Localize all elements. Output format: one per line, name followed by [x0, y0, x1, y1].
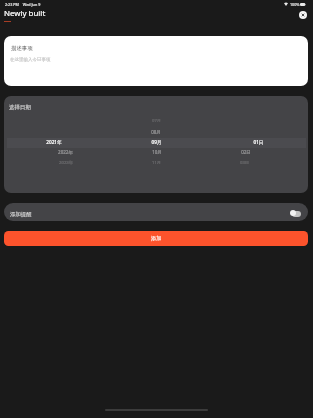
staticText: 100% [290, 2, 300, 7]
staticText: 03日 [240, 160, 249, 166]
staticText: 10月 [152, 149, 162, 155]
button[interactable]: 添加 [4, 231, 308, 246]
staticText: Newly built [4, 8, 46, 19]
staticText: 添加 [151, 235, 162, 242]
button[interactable]: 添加提醒 [4, 203, 308, 221]
staticText: 在这里输入今日事项 [10, 57, 51, 63]
button[interactable]: Toggle reminder [286, 210, 301, 217]
staticText: 2:23 PM Wed Jun 9 [5, 2, 41, 7]
staticText: 描述事项 [11, 45, 33, 52]
button[interactable]: 描述事项 [4, 36, 308, 86]
staticText: 2022年 [58, 149, 73, 155]
staticText: 选择日期 [9, 104, 31, 111]
staticText: 11月 [152, 160, 161, 166]
button[interactable]: Close [299, 11, 307, 19]
staticText: 01日 [253, 139, 264, 145]
staticText: 2021年 [46, 139, 62, 145]
staticText: 09月 [151, 139, 162, 145]
staticText: 2023年 [59, 160, 73, 166]
staticText: 08月 [151, 129, 161, 135]
staticText: 07月 [152, 118, 161, 124]
staticText: 02日 [241, 149, 251, 155]
staticText: 添加提醒 [10, 211, 32, 218]
